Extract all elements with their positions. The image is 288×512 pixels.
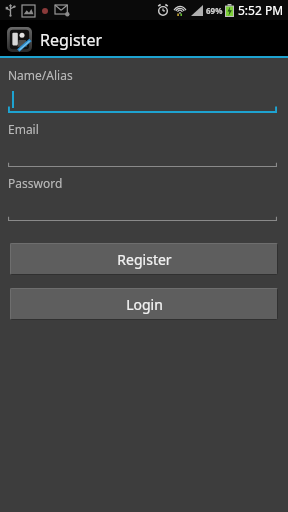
button[interactable]: Password	[0, 175, 288, 229]
button[interactable]: Login	[10, 288, 278, 320]
staticText: Name/Alias	[8, 67, 73, 83]
staticText: Register	[40, 29, 103, 51]
button[interactable]: Name/Alias	[0, 67, 288, 121]
staticText: 69%	[206, 5, 223, 16]
button[interactable]: Email	[0, 121, 288, 175]
staticText: Login	[126, 295, 163, 314]
staticText: 5:52 PM	[238, 2, 284, 18]
staticText: Register	[117, 250, 172, 269]
staticText: Email	[8, 121, 39, 137]
button[interactable]: Register	[10, 243, 278, 275]
staticText: Password	[8, 175, 63, 191]
